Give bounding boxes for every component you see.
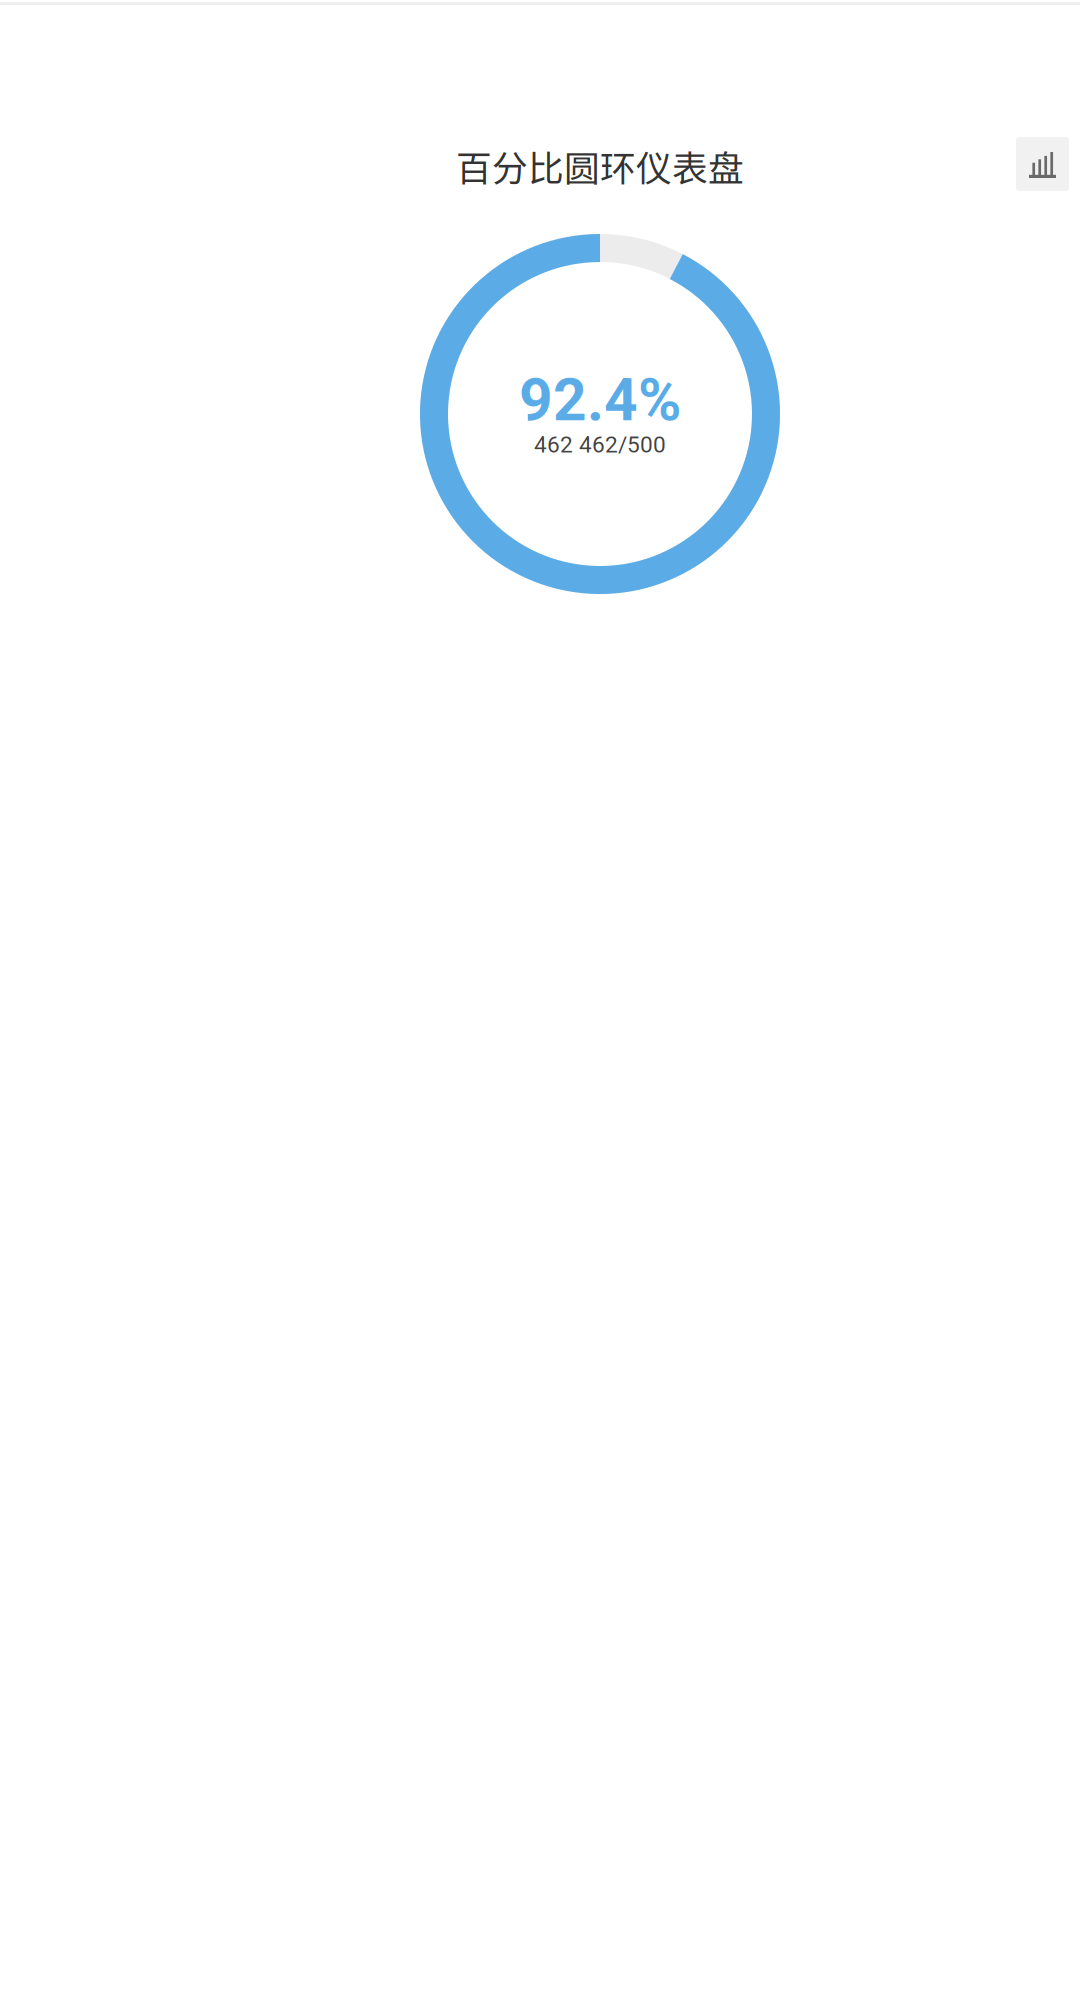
staticText: 百分比圆环仪表盘 [456, 140, 744, 192]
staticText: 462 462/500 [534, 432, 666, 458]
staticText: 92.4% [519, 366, 681, 435]
button[interactable]: 图表 [1016, 137, 1069, 191]
